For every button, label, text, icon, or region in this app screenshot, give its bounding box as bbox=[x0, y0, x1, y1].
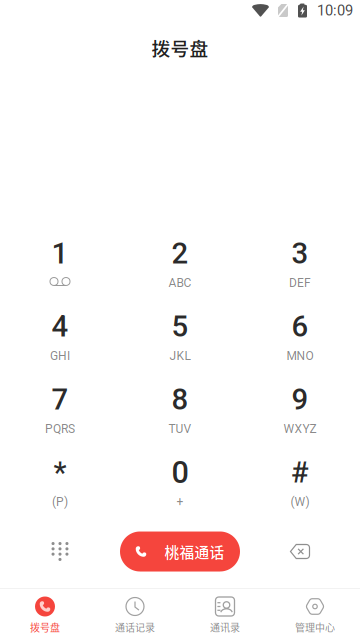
button[interactable]: 管理中心 bbox=[270, 588, 360, 640]
staticText: 3 bbox=[291, 236, 308, 271]
button[interactable]: Keypad bbox=[0, 527, 120, 575]
button[interactable]: 7 bbox=[0, 381, 120, 454]
staticText: 拨号盘 bbox=[30, 620, 60, 634]
staticText: (W) bbox=[290, 495, 309, 509]
button[interactable]: 9 bbox=[240, 381, 360, 454]
button[interactable]: 3 bbox=[240, 235, 360, 308]
staticText: 管理中心 bbox=[295, 620, 335, 634]
staticText: PQRS bbox=[45, 422, 75, 436]
button[interactable]: 通话记录 bbox=[90, 588, 180, 640]
staticText: DEF bbox=[289, 276, 311, 290]
staticText: 拨号盘 bbox=[151, 34, 208, 61]
button[interactable]: 6 bbox=[240, 308, 360, 381]
staticText: 6 bbox=[291, 309, 308, 344]
staticText: 9 bbox=[291, 382, 308, 417]
staticText: MNO bbox=[286, 349, 313, 363]
staticText: 0 bbox=[171, 454, 188, 490]
staticText: 10:09 bbox=[317, 2, 353, 19]
staticText: JKL bbox=[169, 349, 190, 363]
button[interactable]: 5 bbox=[120, 308, 240, 381]
button[interactable]: 桃福通话 bbox=[120, 531, 240, 571]
staticText: WXYZ bbox=[283, 422, 316, 436]
button[interactable]: 8 bbox=[120, 381, 240, 454]
staticText: (P) bbox=[52, 495, 68, 509]
button[interactable]: 拨号盘 bbox=[0, 588, 90, 640]
staticText: 1 bbox=[51, 236, 68, 271]
button[interactable]: 2 bbox=[120, 235, 240, 308]
button[interactable]: # bbox=[240, 454, 360, 527]
staticText: 通话记录 bbox=[115, 620, 155, 634]
staticText: 通讯录 bbox=[210, 620, 240, 634]
staticText: 8 bbox=[171, 382, 188, 417]
staticText: ABC bbox=[168, 276, 191, 290]
staticText: * bbox=[53, 455, 66, 490]
staticText: 桃福通话 bbox=[164, 541, 224, 562]
staticText: GHI bbox=[50, 349, 70, 363]
staticText: + bbox=[176, 495, 183, 509]
button[interactable]: 0 bbox=[120, 454, 240, 527]
staticText: 5 bbox=[171, 309, 188, 344]
staticText: 2 bbox=[171, 236, 188, 271]
staticText: 7 bbox=[51, 382, 68, 417]
staticText: TUV bbox=[168, 422, 191, 436]
button[interactable]: 1 bbox=[0, 235, 120, 308]
staticText: # bbox=[291, 455, 309, 490]
button[interactable]: * bbox=[0, 454, 120, 527]
button[interactable]: 4 bbox=[0, 308, 120, 381]
staticText: 4 bbox=[51, 309, 68, 344]
button[interactable]: Delete bbox=[240, 527, 360, 575]
button[interactable]: 通讯录 bbox=[180, 588, 270, 640]
